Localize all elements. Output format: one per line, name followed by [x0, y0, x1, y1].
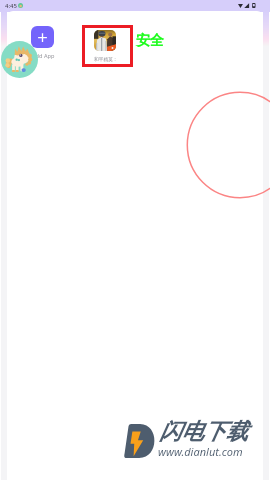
staticText: 安全: [136, 32, 164, 50]
staticText: www.dianlut.com: [158, 444, 243, 459]
button[interactable]: 和平精英：: [85, 28, 130, 64]
staticText: 4:45: [5, 2, 17, 10]
staticText: Add App: [32, 52, 55, 60]
button[interactable]: Add App: [31, 26, 54, 48]
staticText: 和平精英：: [94, 56, 118, 62]
staticText: 闪电下载: [159, 418, 248, 446]
button[interactable]: Profile avatar: [1, 41, 38, 78]
